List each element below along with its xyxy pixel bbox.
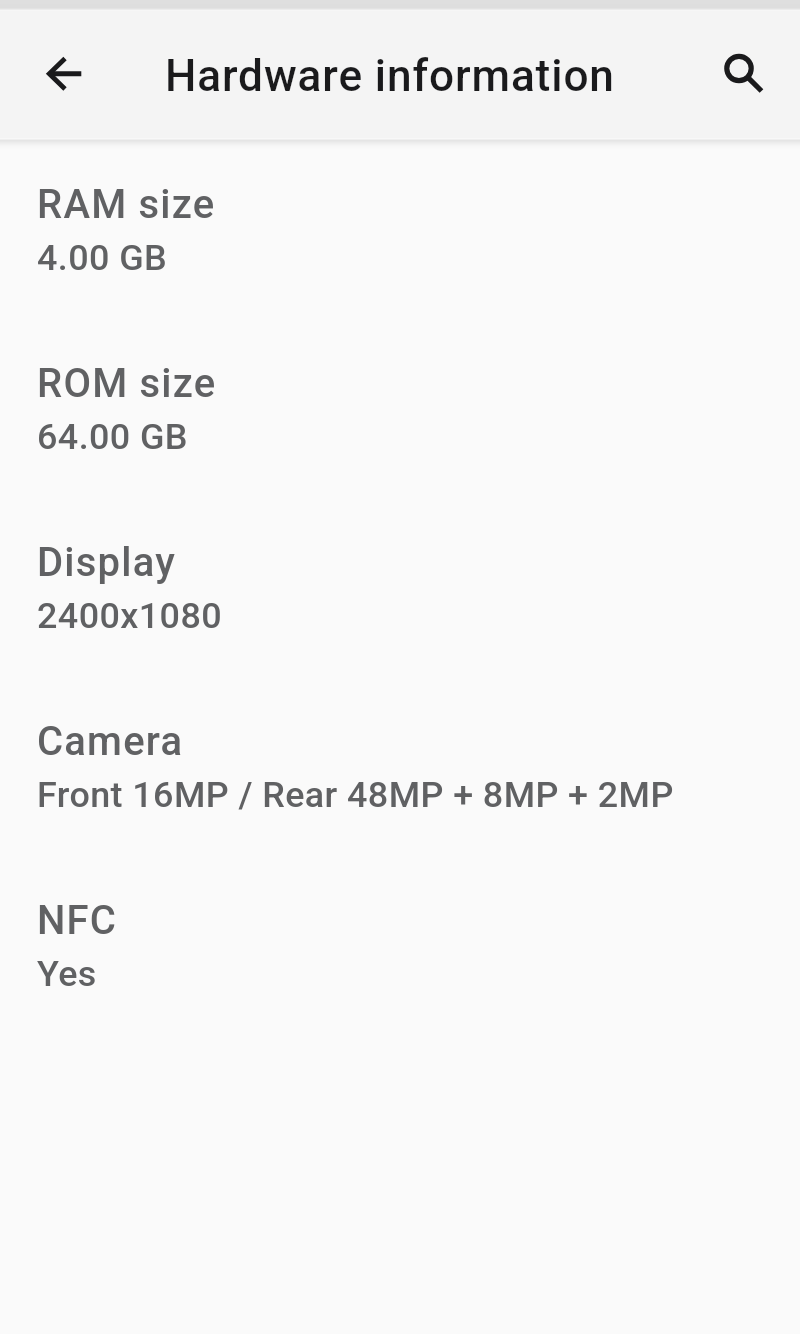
button[interactable]: NFC [0,854,800,1033]
staticText: Hardware information [165,50,615,102]
button[interactable]: ROM size [0,317,800,496]
button[interactable]: Display [0,496,800,675]
staticText: Front 16MP / Rear 48MP + 8MP + 2MP [37,774,674,816]
button[interactable]: Navigate up [40,50,88,98]
staticText: ROM size [37,360,217,407]
staticText: 64.00 GB [37,416,188,458]
staticText: NFC [37,897,118,944]
button[interactable]: RAM size [0,138,800,317]
button[interactable]: Camera [0,675,800,854]
staticText: RAM size [37,181,216,228]
staticText: 2400x1080 [37,595,223,637]
staticText: 4.00 GB [37,237,168,279]
staticText: Camera [37,718,184,765]
staticText: Display [37,539,176,586]
staticText: Yes [37,953,97,995]
button[interactable]: Search [715,44,763,92]
